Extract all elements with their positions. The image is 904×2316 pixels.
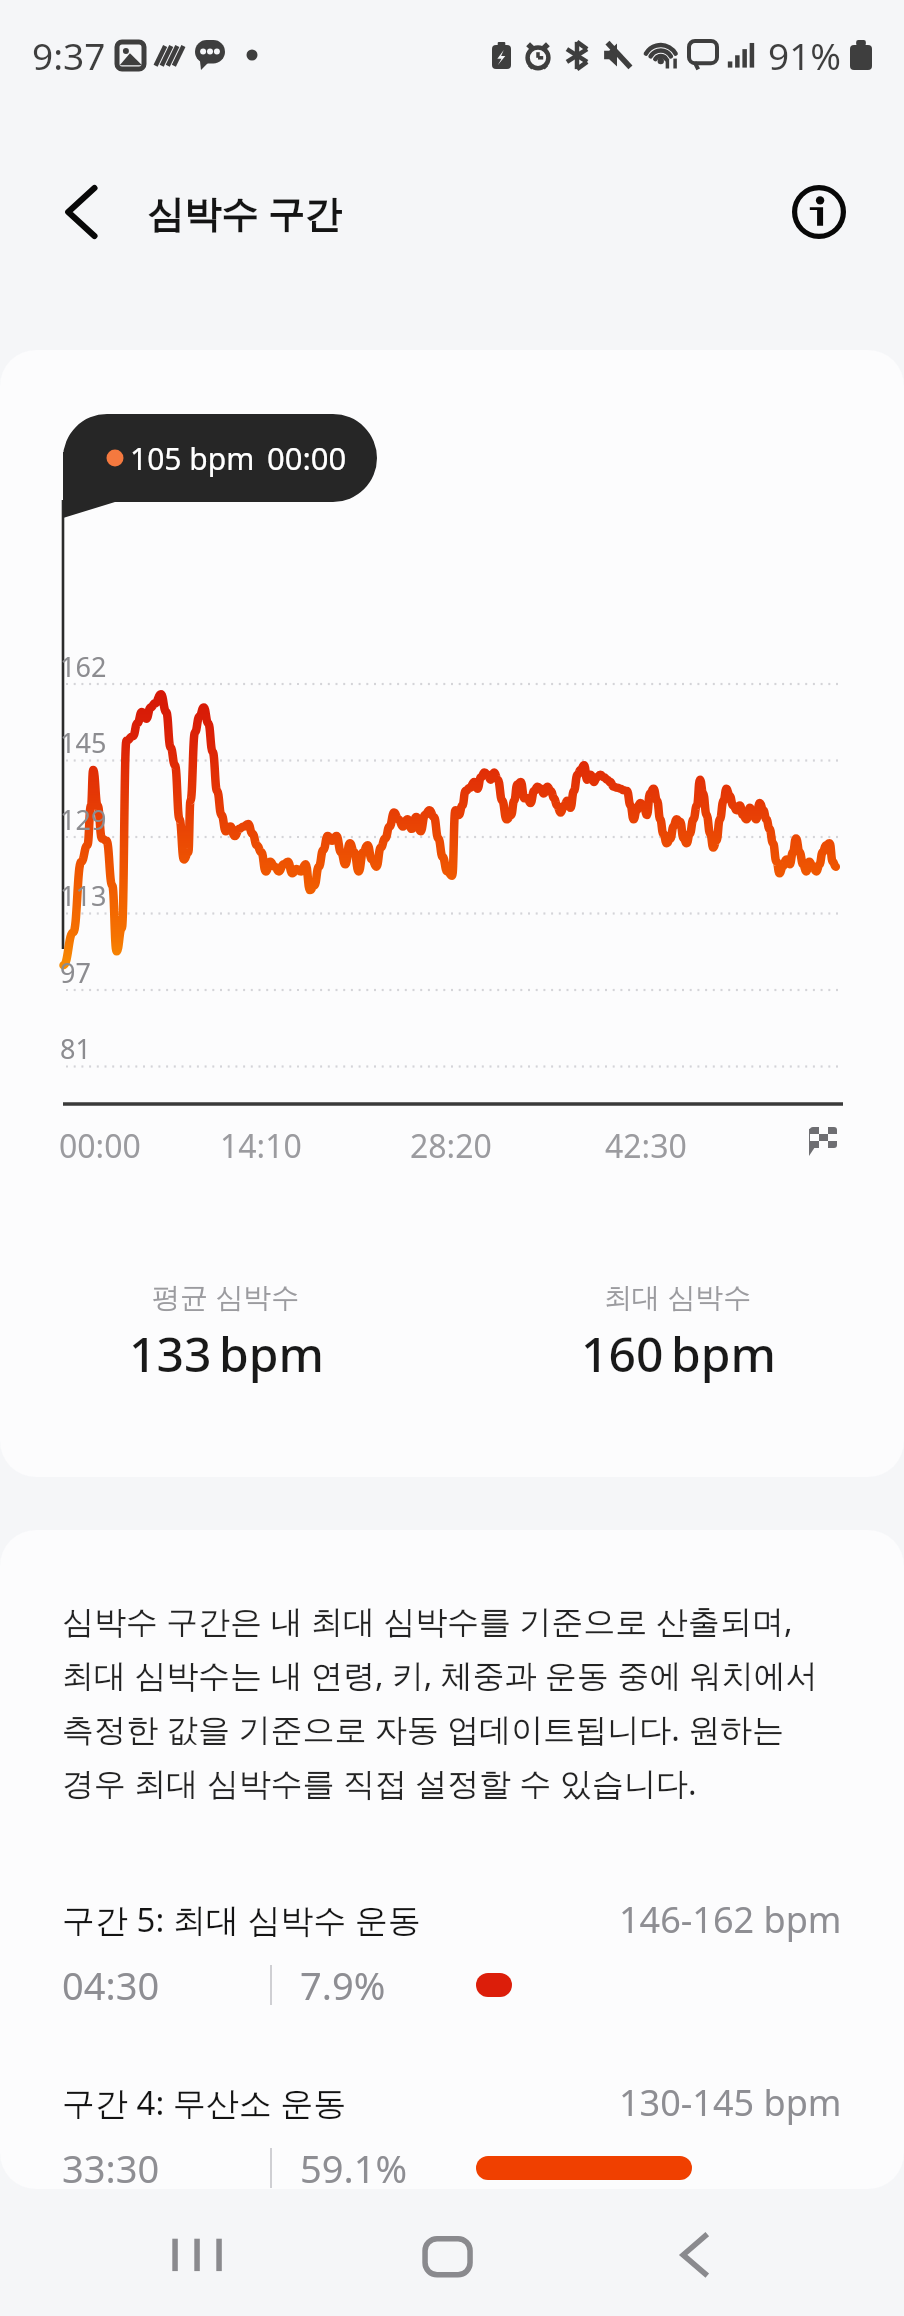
staticText: 00:00 (59, 1124, 141, 1168)
staticText: 162 (60, 648, 107, 685)
staticText: 심박수 구간은 내 최대 심박수를 기준으로 산출되며, 최대 심박수는 내 연… (62, 1599, 824, 1804)
staticText: 113 (60, 877, 107, 914)
button[interactable]: 구간 5: 최대 심박수 운동 (0, 1895, 904, 2011)
staticText: 구간 5: 최대 심박수 운동 (62, 1897, 422, 1942)
button[interactable]: Back (42, 174, 118, 250)
staticText: 최대 심박수 (604, 1277, 752, 1315)
button[interactable]: 구간 4: 무산소 운동 (0, 2078, 904, 2194)
staticText: 7.9% (300, 1959, 476, 2011)
staticText: 105 bpm (130, 438, 255, 479)
button[interactable]: Heart rate chart (0, 350, 904, 1477)
staticText: 42:30 (605, 1124, 687, 1168)
staticText: 133 (129, 1321, 212, 1386)
staticText: 평균 심박수 (152, 1277, 300, 1315)
staticText: 81 (60, 1030, 91, 1067)
staticText: 160 (581, 1321, 664, 1386)
staticText: 59.1% (300, 2142, 476, 2194)
staticText: 33:30 (62, 2142, 208, 2194)
staticText: 심박수 구간 (147, 187, 342, 238)
staticText: 129 (60, 801, 107, 838)
staticText: 91% (768, 30, 842, 80)
staticText: 구간 4: 무산소 운동 (62, 2080, 347, 2125)
staticText: 146-162 bpm (619, 1895, 842, 1944)
staticText: 97 (60, 954, 91, 991)
button[interactable]: Recent apps (153, 2209, 243, 2299)
staticText: 9:37 (32, 30, 106, 80)
button[interactable]: Home (403, 2209, 493, 2299)
staticText: 28:20 (410, 1124, 492, 1168)
staticText: 00:00 (267, 437, 347, 479)
staticText: 145 (60, 724, 107, 761)
staticText: 14:10 (220, 1124, 302, 1168)
staticText: 130-145 bpm (619, 2078, 842, 2127)
button[interactable]: Back (653, 2209, 743, 2299)
staticText: bpm (219, 1321, 324, 1386)
staticText: bpm (671, 1321, 776, 1386)
staticText: 04:30 (62, 1959, 208, 2011)
button[interactable]: Information (792, 185, 846, 239)
